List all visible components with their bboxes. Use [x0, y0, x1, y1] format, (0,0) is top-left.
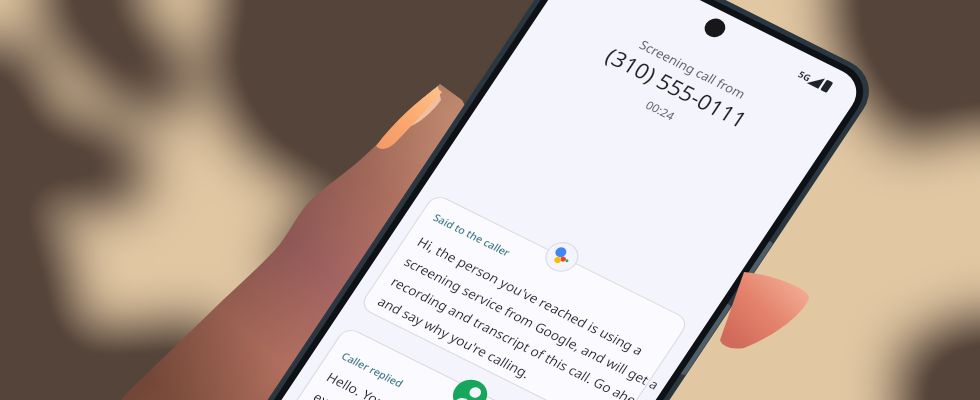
other: Call screening — [0, 0, 980, 400]
